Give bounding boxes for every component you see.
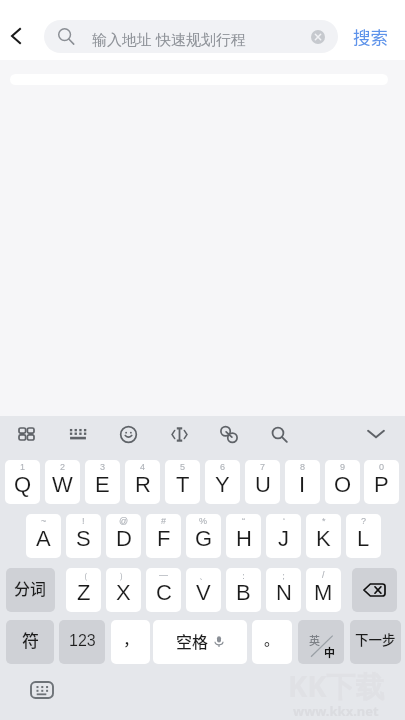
staticText: 1: [20, 462, 26, 472]
button[interactable]: 1: [5, 460, 40, 504]
button[interactable]: 输入地址 快速规划行程: [44, 20, 338, 53]
staticText: ~: [41, 516, 47, 526]
staticText: S: [76, 526, 91, 551]
staticText: www.kkx.net: [293, 702, 379, 720]
staticText: 输入地址 快速规划行程: [92, 29, 246, 49]
button[interactable]: 符: [6, 620, 54, 664]
button[interactable]: ‘: [266, 514, 301, 558]
staticText: 123: [69, 632, 96, 650]
button[interactable]: /: [306, 568, 341, 612]
button[interactable]: 空格: [153, 620, 247, 664]
staticText: G: [195, 526, 213, 551]
button[interactable]: 123: [59, 620, 105, 664]
staticText: M: [314, 580, 333, 605]
staticText: W: [52, 472, 73, 497]
button[interactable]: Switch input language: [298, 620, 344, 664]
button[interactable]: ；: [266, 568, 301, 612]
staticText: 9: [340, 462, 346, 472]
staticText: J: [278, 526, 289, 551]
button[interactable]: 0: [364, 460, 399, 504]
staticText: 搜索: [353, 24, 388, 49]
staticText: P: [374, 472, 389, 497]
staticText: #: [161, 516, 167, 526]
staticText: A: [36, 526, 51, 551]
button[interactable]: ）: [106, 568, 141, 612]
staticText: （: [79, 570, 88, 581]
button[interactable]: ~: [26, 514, 61, 558]
button[interactable]: 、: [186, 568, 221, 612]
staticText: ，: [123, 628, 139, 650]
button[interactable]: Hide keyboard: [30, 681, 54, 699]
staticText: Y: [215, 472, 230, 497]
button[interactable]: Back: [3, 20, 31, 48]
button[interactable]: 2: [45, 460, 80, 504]
button[interactable]: “: [226, 514, 261, 558]
staticText: 空格: [176, 629, 209, 652]
button[interactable]: %: [186, 514, 221, 558]
button[interactable]: #: [146, 514, 181, 558]
button[interactable]: 3: [85, 460, 120, 504]
button[interactable]: 下一步: [350, 620, 401, 664]
staticText: 2: [60, 462, 66, 472]
staticText: O: [334, 472, 352, 497]
staticText: @: [119, 516, 129, 526]
staticText: /: [322, 570, 325, 580]
button[interactable]: 9: [325, 460, 360, 504]
button[interactable]: 6: [205, 460, 240, 504]
staticText: ；: [279, 570, 288, 581]
staticText: H: [236, 526, 252, 551]
staticText: 8: [300, 462, 306, 472]
staticText: E: [95, 472, 110, 497]
staticText: ‘: [283, 516, 285, 526]
staticText: 6: [220, 462, 226, 472]
button[interactable]: Backspace: [352, 568, 397, 612]
staticText: ?: [361, 516, 367, 526]
button[interactable]: @: [106, 514, 141, 558]
button[interactable]: 7: [245, 460, 280, 504]
staticText: 、: [199, 570, 208, 581]
staticText: L: [357, 526, 370, 551]
staticText: C: [156, 580, 172, 605]
staticText: 分词: [14, 576, 47, 599]
button[interactable]: ，: [111, 620, 150, 664]
button[interactable]: 搜索: [345, 12, 397, 48]
staticText: N: [276, 580, 292, 605]
staticText: I: [299, 472, 306, 497]
button[interactable]: Move cursor: [165, 420, 194, 449]
staticText: 英: [309, 632, 320, 648]
staticText: B: [236, 580, 251, 605]
button[interactable]: Clear: [311, 30, 325, 44]
button[interactable]: 8: [285, 460, 320, 504]
button[interactable]: （: [66, 568, 101, 612]
button[interactable]: 4: [125, 460, 160, 504]
button[interactable]: Clipboard: [214, 420, 244, 449]
staticText: Q: [14, 472, 32, 497]
staticText: 0: [379, 462, 385, 472]
button[interactable]: ：: [226, 568, 261, 612]
staticText: ）: [119, 570, 128, 581]
staticText: !: [82, 516, 85, 526]
button[interactable]: —: [146, 568, 181, 612]
button[interactable]: 5: [165, 460, 200, 504]
staticText: ：: [239, 570, 248, 581]
staticText: X: [116, 580, 131, 605]
staticText: D: [116, 526, 132, 551]
button[interactable]: !: [66, 514, 101, 558]
button[interactable]: Grid: [13, 422, 40, 446]
button[interactable]: Search: [265, 420, 294, 449]
button[interactable]: Keyboard layout: [63, 422, 93, 446]
staticText: %: [199, 516, 208, 526]
button[interactable]: Emoji: [114, 420, 143, 449]
button[interactable]: Collapse keyboard: [361, 423, 391, 445]
button[interactable]: ?: [346, 514, 381, 558]
staticText: F: [157, 526, 171, 551]
staticText: 。: [264, 628, 280, 650]
staticText: 中: [324, 644, 335, 660]
staticText: 4: [140, 462, 146, 472]
staticText: T: [176, 472, 190, 497]
staticText: 下一步: [355, 629, 396, 649]
button[interactable]: *: [306, 514, 341, 558]
button[interactable]: 分词: [6, 568, 55, 612]
button[interactable]: 。: [252, 620, 292, 664]
